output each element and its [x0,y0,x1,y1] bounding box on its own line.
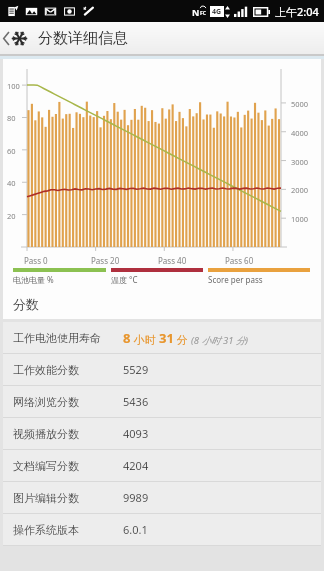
staticText: 4G [212,7,222,17]
button[interactable]: 操作系统版本 [3,514,321,545]
staticText: 工作效能分数 [13,363,123,377]
button[interactable]: 图片编辑分数 [3,482,321,513]
staticText: 4000 [291,128,309,138]
staticText: 6.0.1 [123,522,148,537]
staticText: 4204 [123,458,149,473]
staticText: 文档编写分数 [13,459,123,473]
staticText: 工作电池使用寿命 [13,331,123,345]
staticText: 4093 [123,426,149,441]
staticText: 温度 °C [111,274,138,285]
staticText: 分数 [13,296,39,312]
staticText: FC [200,10,206,17]
staticText: N [192,6,200,18]
staticText: 网络浏览分数 [13,395,123,409]
staticText: 40 [7,178,16,188]
staticText: 操作系统版本 [13,523,123,537]
staticText: 5436 [123,394,149,409]
staticText: 视频播放分数 [13,427,123,441]
staticText: 5529 [123,362,149,377]
staticText: 31 [159,329,174,347]
staticText: 60 [7,146,16,156]
staticText: 小时 [131,332,159,347]
button[interactable]: 视频播放分数 [3,418,321,449]
staticText: Pass 20 [91,255,120,266]
staticText: 1000 [291,214,309,224]
button[interactable]: 网络浏览分数 [3,386,321,417]
staticText: 分 [174,332,191,347]
staticText: 20 [7,211,16,221]
staticText: (8 小时 31 分) [191,334,249,347]
staticText: 2000 [291,185,309,195]
staticText: 上午2:04 [275,4,319,19]
staticText: Pass 40 [158,255,187,266]
staticText: 5000 [291,99,309,109]
button[interactable]: 工作电池使用寿命 [3,322,321,353]
button[interactable]: 工作效能分数 [3,354,321,385]
staticText: 电池电量 % [13,274,54,285]
staticText: 9989 [123,490,149,505]
staticText: 3000 [291,157,309,167]
button[interactable]: Back [0,22,30,54]
staticText: 8 [123,329,131,347]
staticText: 80 [7,113,16,123]
staticText: Pass 60 [225,255,254,266]
staticText: Pass 0 [24,255,48,266]
button[interactable]: 文档编写分数 [3,450,321,481]
staticText: Score per pass [208,274,263,285]
staticText: 分数详细信息 [38,29,128,48]
staticText: 图片编辑分数 [13,491,123,505]
staticText: 100 [7,81,20,91]
